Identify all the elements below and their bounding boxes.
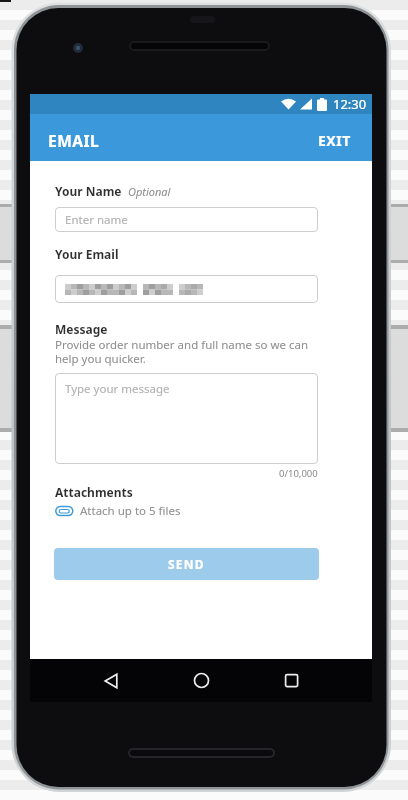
- button[interactable]: Type your message: [55, 373, 318, 464]
- staticText: Enter name: [65, 212, 128, 228]
- button[interactable]: Enter name: [55, 207, 318, 232]
- staticText: EMAIL: [48, 130, 100, 151]
- staticText: 0/10,000: [279, 467, 318, 480]
- staticText: Your Name: [55, 183, 122, 199]
- button[interactable]: Attach up to 5 files: [55, 503, 181, 519]
- staticText: Message: [55, 321, 108, 337]
- staticText: Provide order number and full name so we…: [55, 337, 309, 366]
- button[interactable]: SEND: [54, 548, 319, 580]
- staticText: EXIT: [318, 131, 351, 150]
- button[interactable]: [55, 275, 318, 303]
- button[interactable]: [271, 659, 311, 702]
- staticText: Your Email: [55, 246, 119, 262]
- staticText: Attachments: [55, 484, 133, 500]
- button[interactable]: [181, 659, 221, 702]
- button[interactable]: EXIT: [311, 124, 358, 157]
- staticText: Optional: [128, 184, 171, 199]
- staticText: Type your message: [65, 381, 170, 397]
- staticText: Attach up to 5 files: [80, 503, 181, 519]
- button[interactable]: [91, 659, 131, 702]
- staticText: SEND: [168, 556, 205, 572]
- staticText: 12:30: [333, 95, 367, 113]
